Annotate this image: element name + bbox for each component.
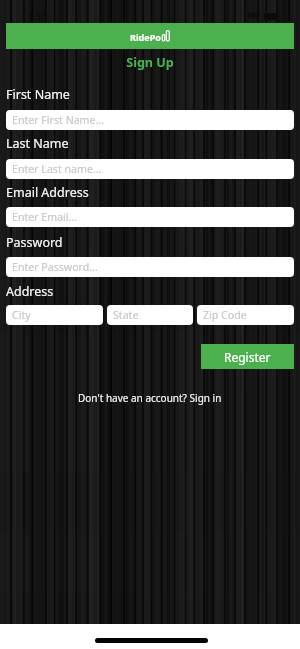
button[interactable]: Don't have an account? Sign in bbox=[0, 391, 300, 405]
staticText: City bbox=[12, 308, 31, 322]
button[interactable]: Enter First Name... bbox=[6, 110, 294, 130]
staticText: RidePo bbox=[130, 31, 161, 43]
staticText: Enter First Name... bbox=[12, 113, 105, 127]
button[interactable]: Zip Code bbox=[197, 305, 294, 325]
button[interactable]: City bbox=[6, 305, 103, 325]
button[interactable]: RidePo bbox=[6, 23, 294, 49]
staticText: First Name bbox=[6, 86, 70, 103]
button[interactable]: Enter Last name... bbox=[6, 159, 294, 179]
staticText: Password bbox=[6, 234, 63, 251]
button[interactable]: Enter Password... bbox=[6, 257, 294, 277]
button[interactable]: State bbox=[107, 305, 193, 325]
staticText: State bbox=[113, 308, 139, 322]
staticText: Enter Email... bbox=[12, 210, 78, 224]
staticText: 1:30 bbox=[28, 10, 46, 22]
staticText: Email Address bbox=[6, 184, 89, 201]
button[interactable]: Register bbox=[201, 344, 294, 369]
staticText: Enter Password... bbox=[12, 260, 98, 274]
button[interactable]: Enter Email... bbox=[6, 207, 294, 227]
staticText: Don't have an account? Sign in bbox=[78, 391, 222, 405]
other: Wi-Fi bbox=[247, 12, 259, 20]
staticText: Register bbox=[224, 349, 271, 365]
staticText: Address bbox=[6, 283, 54, 300]
staticText: Sign Up bbox=[0, 54, 300, 71]
staticText: Last Name bbox=[6, 135, 69, 152]
staticText: Enter Last name... bbox=[12, 162, 102, 176]
staticText: Zip Code bbox=[203, 308, 247, 322]
